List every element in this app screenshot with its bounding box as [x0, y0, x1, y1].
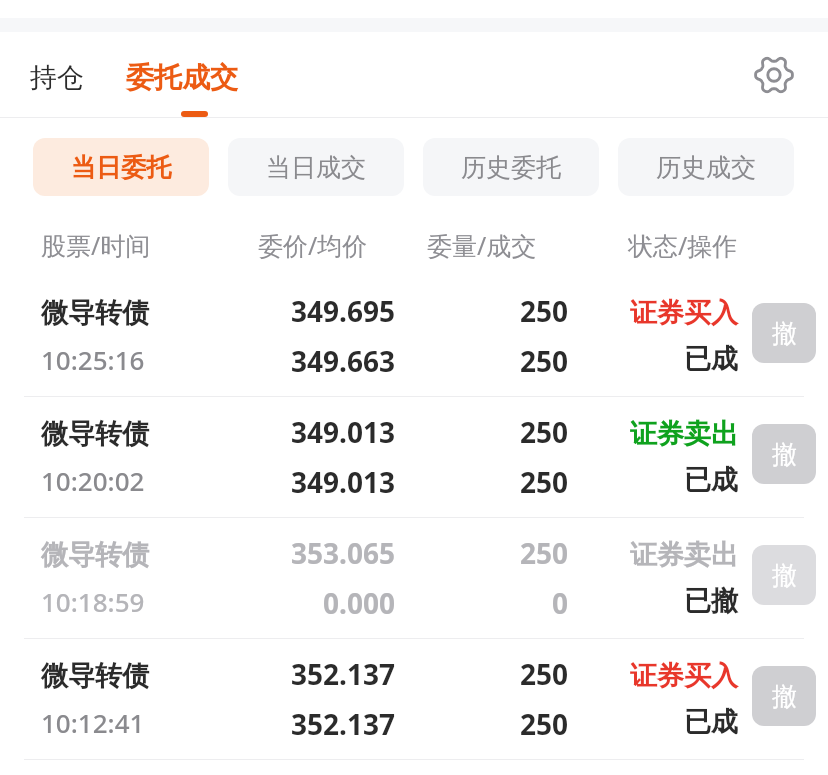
staticText: 250 — [519, 655, 568, 693]
button[interactable]: 持仓 — [24, 59, 90, 97]
button[interactable]: 委托成交 — [120, 58, 244, 97]
staticText: 证券买入 — [630, 296, 738, 330]
staticText: 352.137 — [291, 705, 395, 743]
staticText: 250 — [519, 342, 568, 380]
staticText: 0 — [551, 584, 568, 622]
staticText: 撤 — [772, 318, 797, 349]
staticText: 250 — [519, 292, 568, 330]
button[interactable]: 微导转债 — [0, 397, 828, 518]
staticText: 已撤 — [684, 584, 738, 618]
staticText: 10:20:02 — [41, 463, 145, 498]
staticText: 10:12:41 — [41, 705, 145, 740]
staticText: 历史委托 — [461, 152, 561, 183]
staticText: 委价/均价 — [258, 228, 368, 262]
staticText: 微导转债 — [41, 659, 149, 693]
staticText: 349.013 — [291, 413, 395, 451]
button[interactable]: 微导转债 — [0, 639, 828, 760]
staticText: 353.065 — [291, 534, 395, 572]
button[interactable]: 撤单 — [752, 303, 816, 363]
staticText: 证券买入 — [630, 659, 738, 693]
staticText: 撤 — [772, 439, 797, 470]
staticText: 349.013 — [291, 463, 395, 501]
button[interactable]: 历史委托 — [423, 138, 599, 196]
staticText: 已成 — [684, 705, 738, 739]
button[interactable]: 当日成交 — [228, 138, 404, 196]
staticText: 10:25:16 — [41, 342, 145, 377]
staticText: 委量/成交 — [427, 228, 537, 262]
staticText: 历史成交 — [656, 152, 756, 183]
staticText: 委托成交 — [126, 60, 238, 95]
staticText: 352.137 — [291, 655, 395, 693]
staticText: 当日成交 — [266, 152, 366, 183]
staticText: 持仓 — [30, 61, 84, 95]
staticText: 250 — [519, 534, 568, 572]
button[interactable]: 当日委托 — [33, 138, 209, 196]
staticText: 250 — [519, 413, 568, 451]
staticText: 349.663 — [291, 342, 395, 380]
staticText: 股票/时间 — [41, 228, 151, 262]
button[interactable]: 微导转债 — [0, 276, 828, 397]
staticText: 状态/操作 — [628, 228, 738, 262]
staticText: 证券卖出 — [630, 538, 738, 572]
button[interactable]: 撤单 — [752, 424, 816, 484]
staticText: 撤 — [772, 560, 797, 591]
staticText: 已成 — [684, 342, 738, 376]
button[interactable]: 历史成交 — [618, 138, 794, 196]
staticText: 已成 — [684, 463, 738, 497]
staticText: 微导转债 — [41, 417, 149, 451]
button[interactable]: 撤单 — [752, 545, 816, 605]
staticText: 证券卖出 — [630, 417, 738, 451]
staticText: 微导转债 — [41, 538, 149, 572]
button[interactable]: 微导转债 — [0, 518, 828, 639]
staticText: 250 — [519, 463, 568, 501]
staticText: 349.695 — [291, 292, 395, 330]
staticText: 10:18:59 — [41, 584, 145, 619]
staticText: 0.000 — [323, 584, 395, 622]
button[interactable]: Settings — [748, 49, 800, 101]
staticText: 撤 — [772, 681, 797, 712]
button[interactable]: 撤单 — [752, 666, 816, 726]
staticText: 250 — [519, 705, 568, 743]
staticText: 当日委托 — [71, 152, 171, 183]
staticText: 微导转债 — [41, 296, 149, 330]
